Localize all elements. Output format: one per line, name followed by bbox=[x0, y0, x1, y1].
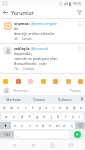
button[interactable]: More options bbox=[78, 21, 83, 26]
staticText: y bbox=[39, 105, 41, 110]
button[interactable]: o bbox=[57, 104, 64, 111]
button[interactable]: Paylaş bbox=[69, 87, 82, 94]
button[interactable]: Yanıtınızı... bbox=[13, 88, 69, 93]
button[interactable]: h bbox=[41, 113, 48, 120]
button[interactable]: t bbox=[29, 104, 36, 111]
button[interactable]: u bbox=[43, 104, 50, 111]
staticText: ?123 bbox=[4, 133, 11, 137]
staticText: m bbox=[56, 123, 60, 128]
button[interactable]: w bbox=[8, 104, 15, 111]
staticText: ş bbox=[72, 114, 74, 119]
staticText: x bbox=[21, 123, 24, 128]
button[interactable]: n bbox=[47, 122, 54, 129]
button[interactable]: Emoji bbox=[27, 78, 33, 84]
staticText: Yanıtınızı... bbox=[13, 88, 31, 93]
button[interactable]: p bbox=[64, 104, 71, 111]
button[interactable]: Backspace bbox=[75, 122, 85, 129]
staticText: r bbox=[25, 105, 27, 110]
button[interactable]: ö bbox=[61, 122, 68, 129]
staticText: g bbox=[36, 114, 39, 119]
staticText: . bbox=[64, 132, 66, 137]
button[interactable]: ş bbox=[69, 113, 76, 120]
button[interactable]: s bbox=[10, 113, 18, 120]
button[interactable]: Emoji bbox=[15, 78, 21, 84]
button[interactable]: Back bbox=[0, 7, 11, 18]
button[interactable]: e bbox=[15, 104, 22, 111]
button[interactable]: More options bbox=[78, 46, 83, 51]
button[interactable]: Voice input bbox=[78, 95, 85, 103]
staticText: d bbox=[21, 114, 24, 119]
button[interactable]: Symbols bbox=[0, 131, 14, 138]
button[interactable]: ğ bbox=[71, 104, 78, 111]
button[interactable]: z bbox=[11, 122, 19, 129]
staticText: f bbox=[29, 114, 31, 119]
button[interactable]: ü bbox=[78, 104, 85, 111]
button[interactable]: Merhaba bbox=[0, 95, 26, 103]
staticText: t bbox=[32, 105, 34, 110]
staticText: 4h bbox=[14, 37, 18, 41]
staticText: 1st bbox=[14, 67, 19, 71]
button[interactable]: x bbox=[19, 122, 26, 129]
staticText: k bbox=[57, 114, 60, 119]
button[interactable]: Home bbox=[28, 140, 38, 150]
button[interactable]: d bbox=[18, 113, 26, 120]
staticText: v bbox=[36, 123, 38, 128]
staticText: kanala bbox=[22, 37, 32, 41]
button[interactable]: c bbox=[26, 122, 33, 129]
staticText: kaçandılar, sitonde ve poaltyani ofan Bo… bbox=[14, 51, 58, 66]
staticText: bir devriiği verilen etkenler bbox=[14, 26, 55, 36]
staticText: Merhaba bbox=[6, 97, 21, 102]
button[interactable]: y bbox=[36, 104, 43, 111]
button[interactable]: Emoji bbox=[40, 78, 46, 84]
button[interactable]: ı bbox=[50, 104, 57, 111]
staticText: q bbox=[3, 105, 6, 110]
staticText: s bbox=[13, 114, 15, 119]
button[interactable]: i bbox=[76, 113, 83, 120]
button[interactable]: Emoji bbox=[52, 78, 58, 84]
button[interactable]: Emoji bbox=[65, 78, 71, 84]
button[interactable]: Back bbox=[9, 140, 19, 150]
button[interactable]: Send bbox=[74, 131, 81, 138]
staticText: , bbox=[17, 132, 19, 137]
button[interactable]: Hide keyboard bbox=[66, 140, 76, 150]
staticText: Canlışa bbox=[23, 67, 34, 71]
button[interactable]: Filter bbox=[74, 7, 85, 18]
staticText: u bbox=[45, 105, 48, 110]
button[interactable]: f bbox=[26, 113, 34, 120]
staticText: p bbox=[66, 105, 69, 110]
button[interactable]: . bbox=[61, 131, 69, 138]
button[interactable]: Emoji bbox=[77, 78, 83, 84]
button[interactable]: r bbox=[22, 104, 29, 111]
staticText: j bbox=[51, 114, 53, 119]
staticText: o bbox=[59, 105, 62, 110]
button[interactable]: j bbox=[48, 113, 55, 120]
button[interactable]: k bbox=[55, 113, 62, 120]
staticText: i bbox=[79, 114, 81, 119]
button[interactable]: l bbox=[62, 113, 69, 120]
button[interactable]: g bbox=[34, 113, 41, 120]
button[interactable]: Tamam bbox=[26, 95, 52, 103]
button[interactable]: Shift bbox=[0, 122, 11, 129]
button[interactable]: Emoji bbox=[2, 78, 8, 84]
staticText: ç bbox=[71, 123, 73, 128]
staticText: b bbox=[42, 123, 45, 128]
staticText: zaklaşile bbox=[14, 46, 30, 51]
button[interactable]: Recents bbox=[47, 140, 57, 150]
button[interactable]: b bbox=[40, 122, 47, 129]
staticText: Tamam bbox=[33, 97, 45, 102]
button[interactable]: zaklaşile bbox=[0, 44, 85, 73]
button[interactable]: a bbox=[2, 113, 10, 120]
staticText: Paylaş bbox=[70, 88, 81, 93]
button[interactable]: v bbox=[33, 122, 40, 129]
button[interactable]: , bbox=[14, 131, 22, 138]
button[interactable]: ç bbox=[68, 122, 75, 129]
staticText: z bbox=[14, 123, 16, 128]
button[interactable]: onyması bbox=[0, 19, 85, 43]
button[interactable]: q bbox=[0, 104, 8, 111]
staticText: h bbox=[43, 114, 46, 119]
button[interactable]: Kullanıcı bbox=[52, 95, 78, 103]
button[interactable]: m bbox=[54, 122, 61, 129]
staticText: ı bbox=[53, 105, 55, 110]
staticText: e bbox=[17, 105, 20, 110]
